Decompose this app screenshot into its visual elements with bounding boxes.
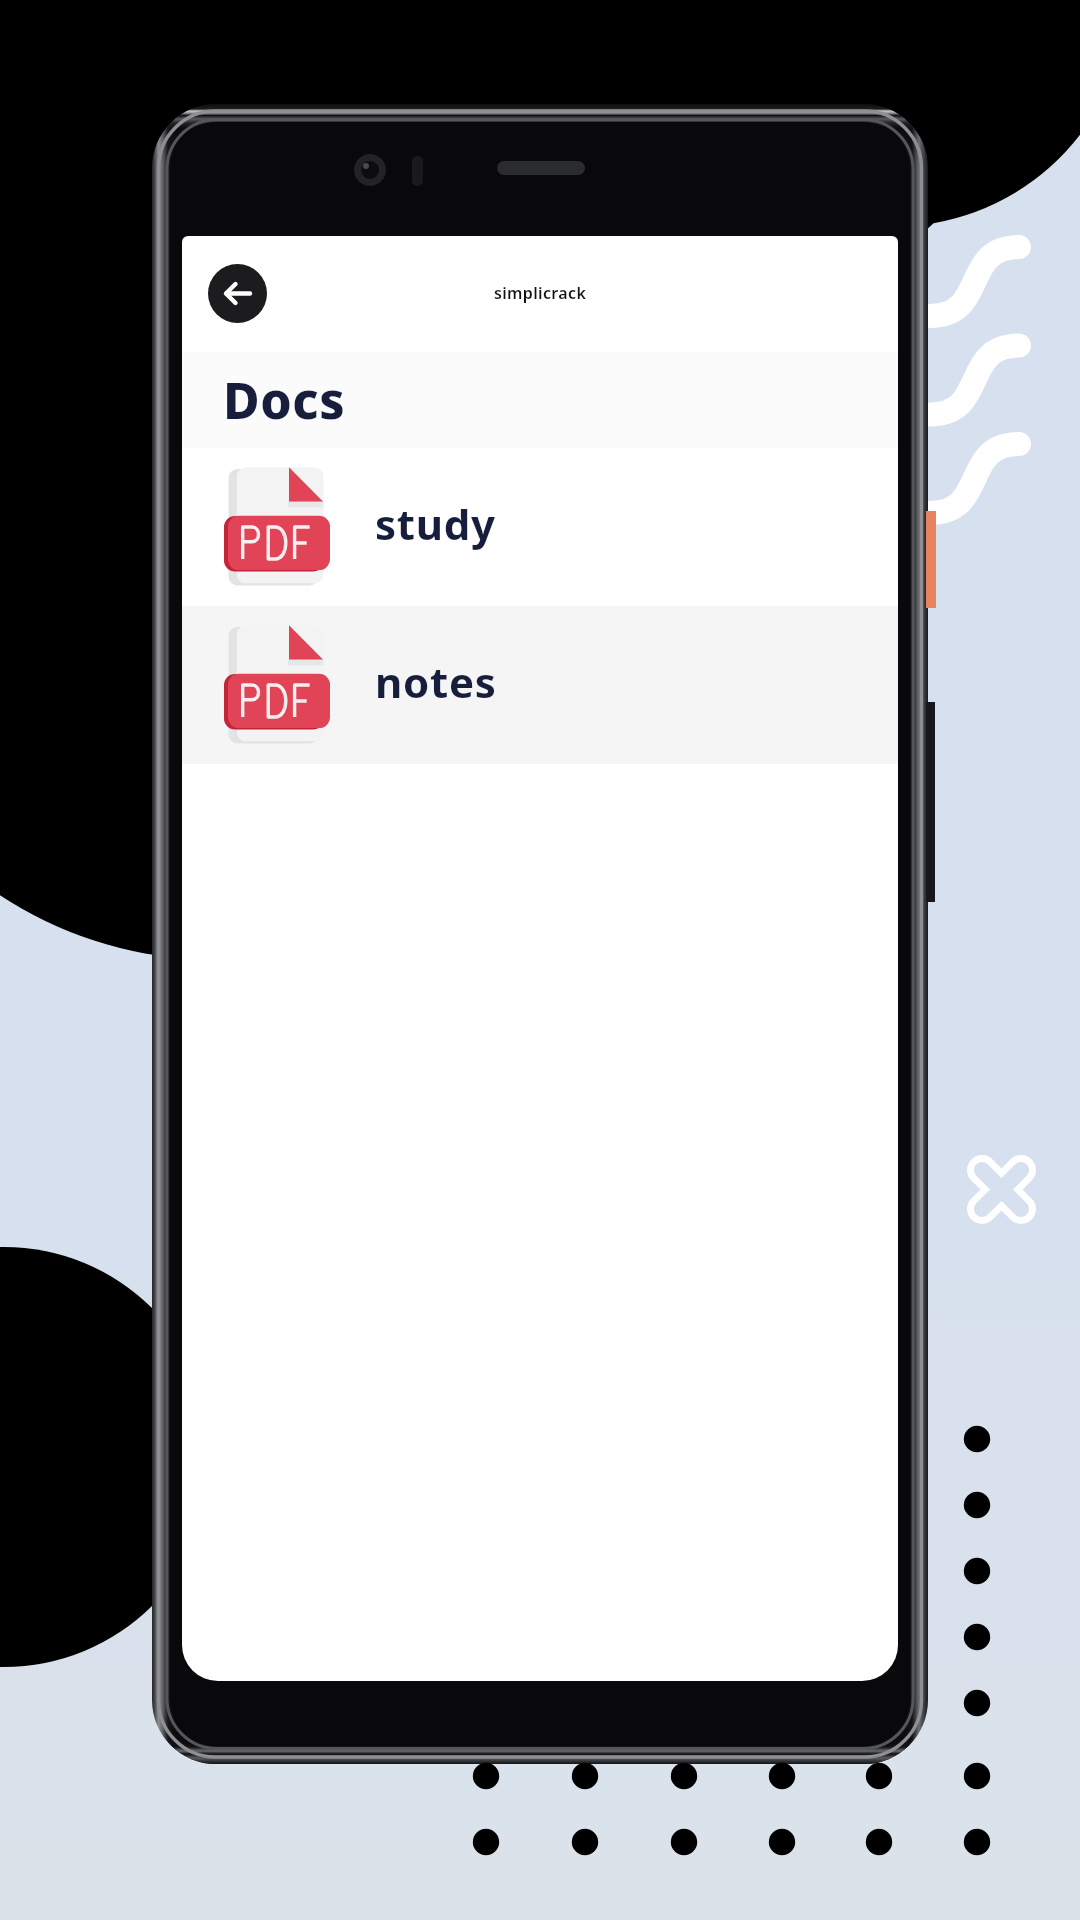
staticText: Docs — [223, 366, 346, 434]
staticText: study — [375, 495, 496, 552]
staticText: notes — [375, 653, 497, 710]
button[interactable]: Back — [208, 264, 267, 323]
button[interactable]: study — [182, 448, 898, 606]
button[interactable]: notes — [182, 606, 898, 764]
staticText: simplicrack — [494, 282, 587, 304]
